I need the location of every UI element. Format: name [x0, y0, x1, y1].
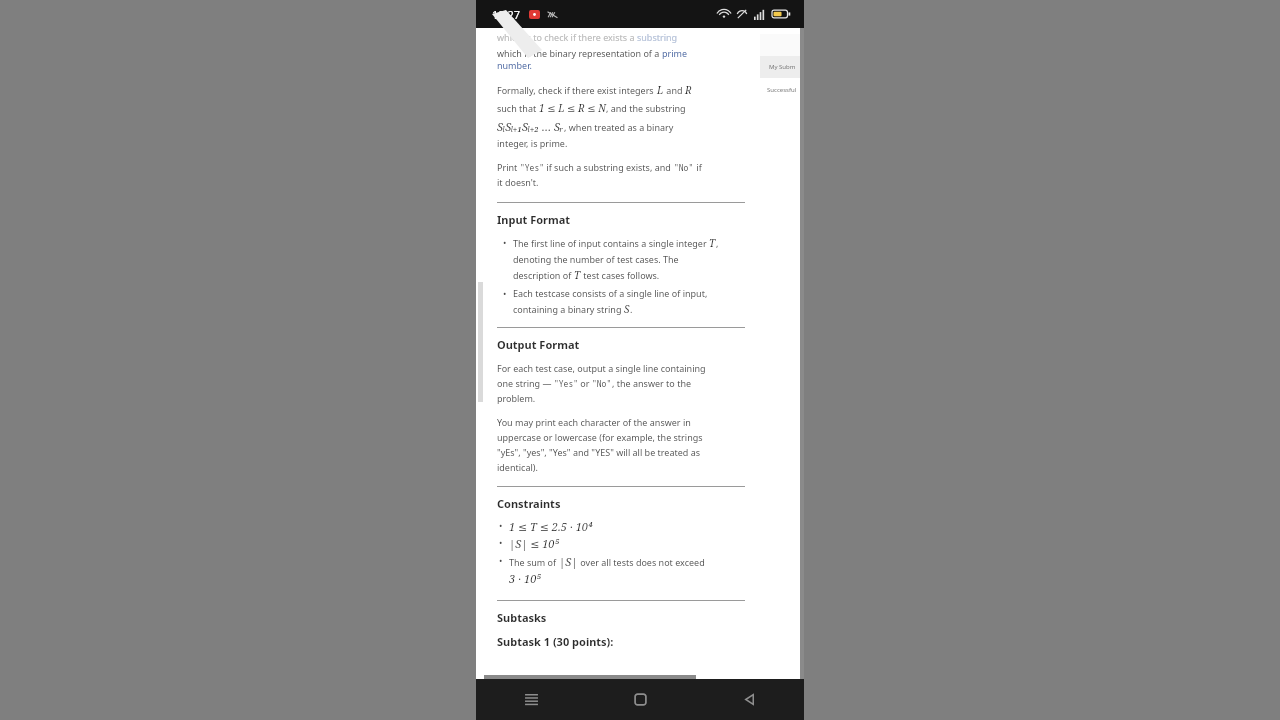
staticText: Input Format [497, 212, 571, 227]
staticText: identical). [497, 461, 538, 473]
staticText: • [499, 536, 503, 548]
button[interactable]: Recent apps [476, 679, 586, 720]
staticText: , and the substring [606, 102, 686, 114]
button[interactable]: Successful [760, 78, 804, 102]
staticText: • [499, 519, 503, 531]
staticText: which is the binary representation of a [497, 47, 662, 59]
staticText: if [694, 161, 702, 173]
staticText: 1 ≤ T ≤ 2.5 · 10⁴ [509, 519, 593, 534]
staticText: Output Format [497, 337, 580, 352]
staticText: one string — [497, 377, 554, 389]
staticText: , when treated as a binary [564, 121, 674, 133]
staticText: or [578, 377, 592, 389]
staticText: if such a substring exists, and [544, 161, 674, 173]
staticText: Successful [767, 86, 797, 94]
staticText: R [685, 83, 692, 97]
staticText: description of [513, 269, 574, 281]
staticText: Constraints [497, 496, 561, 511]
staticText: "No" [592, 378, 612, 389]
staticText: T [574, 268, 581, 282]
staticText: denoting the number of test cases. The [513, 253, 679, 265]
staticText: Each testcase consists of a single line … [513, 287, 708, 299]
staticText: problem. [497, 392, 536, 404]
staticText: "No" [674, 162, 694, 173]
staticText: T [709, 236, 716, 250]
staticText: L [657, 83, 664, 97]
staticText: • [503, 287, 507, 299]
staticText: SₗSₗ₊₁Sₗ₊₂ … Sᵣ [497, 119, 564, 134]
staticText: For each test case, output a single line… [497, 362, 706, 374]
staticText: which is to check if there exists a [497, 31, 637, 43]
staticText: over all tests does not exceed [578, 556, 705, 568]
staticText: and [664, 84, 685, 96]
staticText: The first line of input contains a singl… [513, 237, 709, 249]
staticText: 1 ≤ L ≤ R ≤ N [539, 101, 606, 115]
button[interactable]: number. [497, 59, 532, 71]
button[interactable]: Home [586, 679, 695, 720]
staticText: such that [497, 102, 539, 114]
staticText: • [499, 554, 503, 566]
staticText: Subtasks [497, 610, 547, 625]
staticText: . [630, 303, 633, 315]
staticText: integer, is prime. [497, 137, 568, 149]
staticText: Subtask 1 (30 points): [497, 634, 614, 649]
staticText: S [624, 302, 630, 316]
staticText: , [716, 237, 719, 249]
staticText: My Subm [769, 63, 796, 71]
staticText: "yEs", "yes", "Yes" and "YES" will all b… [497, 446, 701, 458]
staticText: , the answer to the [612, 377, 692, 389]
button[interactable]: Back [695, 679, 804, 720]
staticText: |S| ≤ 10⁵ [509, 536, 559, 551]
staticText: 3 · 10⁵ [509, 571, 541, 586]
button[interactable]: My Subm [760, 56, 804, 78]
staticText: |S| [559, 554, 578, 569]
staticText: You may print each character of the answ… [497, 416, 691, 428]
staticText: Formally, check if there exist integers [497, 84, 657, 96]
staticText: The sum of [509, 556, 559, 568]
staticText: Print [497, 161, 520, 173]
staticText: substring [637, 31, 678, 43]
staticText: • [503, 236, 507, 248]
staticText: "Yes" [554, 378, 578, 389]
staticText: containing a binary string [513, 303, 624, 315]
button[interactable]: prime [662, 47, 688, 59]
staticText: test cases follows. [581, 269, 660, 281]
staticText: 19:27 [492, 7, 521, 22]
staticText: uppercase or lowercase (for example, the… [497, 431, 703, 443]
staticText: "Yes" [520, 162, 544, 173]
staticText: it doesn't. [497, 176, 539, 188]
